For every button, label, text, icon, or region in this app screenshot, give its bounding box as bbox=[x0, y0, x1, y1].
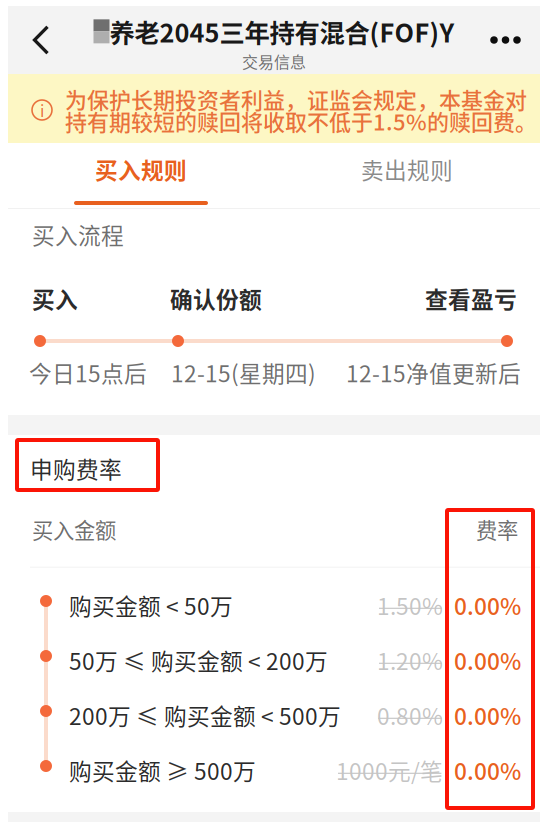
button[interactable]: More bbox=[471, 6, 540, 74]
staticText: 0.00% bbox=[454, 644, 521, 677]
staticText: 养老2045三年持有混合(FOF)Y bbox=[109, 13, 454, 50]
staticText: 持有期较短的赎回将收取不低于1.5%的赎回费。 bbox=[65, 105, 537, 137]
staticText: 确认份额 bbox=[170, 282, 262, 315]
staticText: 为保护长期投资者利益，证监会规定，本基金对 bbox=[65, 83, 527, 115]
staticText: 1.20% bbox=[377, 644, 443, 677]
staticText: 0.80% bbox=[377, 699, 443, 732]
staticText: 买入金额 bbox=[32, 514, 116, 545]
staticText: i bbox=[40, 98, 44, 122]
staticText: 查看盈亏 bbox=[425, 282, 517, 315]
staticText: 今日15点后 bbox=[29, 356, 147, 389]
staticText: 0.00% bbox=[454, 589, 521, 622]
staticText: 购买金额 < 50万 bbox=[69, 589, 233, 622]
staticText: 0.00% bbox=[454, 754, 521, 787]
staticText: 交易信息 bbox=[242, 50, 306, 73]
staticText: 12-15(星期四) bbox=[171, 356, 316, 389]
staticText: 200万 ≤ 购买金额 < 500万 bbox=[69, 699, 341, 732]
staticText: 1000元/笔 bbox=[336, 754, 443, 787]
button[interactable]: Back bbox=[8, 5, 74, 75]
button[interactable]: 卖出规则 bbox=[274, 143, 540, 208]
staticText: 12-15净值更新后 bbox=[346, 356, 521, 389]
staticText: 卖出规则 bbox=[361, 153, 453, 185]
staticText: 费率 bbox=[476, 514, 518, 545]
staticText: 50万 ≤ 购买金额 < 200万 bbox=[69, 644, 328, 677]
staticText: 1.50% bbox=[377, 589, 443, 622]
staticText: 买入规则 bbox=[95, 153, 187, 185]
staticText: 0.00% bbox=[454, 699, 521, 732]
staticText: 买入 bbox=[32, 282, 78, 315]
button[interactable]: 买入规则 bbox=[8, 143, 274, 208]
staticText: 买入流程 bbox=[32, 218, 124, 251]
staticText: 购买金额 ≥ 500万 bbox=[69, 754, 256, 787]
staticText: 申购费率 bbox=[30, 452, 122, 485]
